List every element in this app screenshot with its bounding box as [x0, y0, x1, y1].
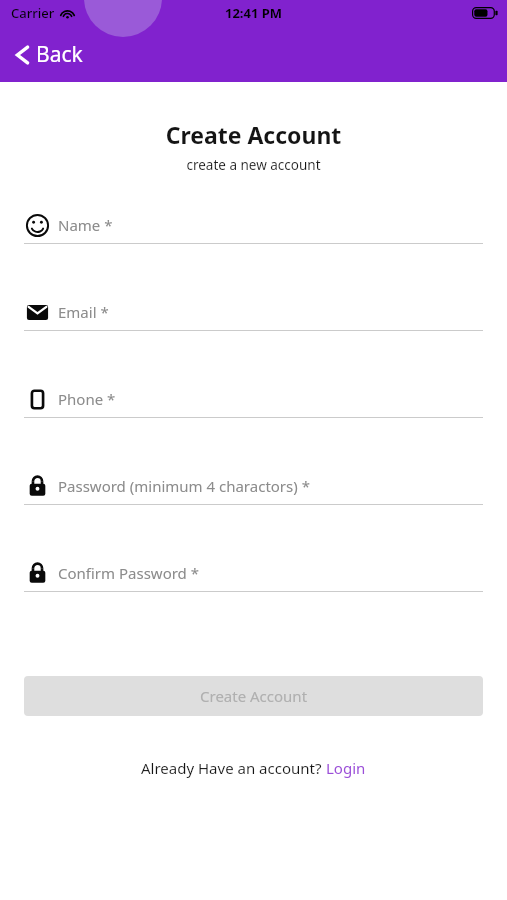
button[interactable]: Password [0, 473, 507, 560]
other: Phone [26, 388, 49, 411]
button[interactable]: Phone [0, 386, 507, 473]
staticText: Carrier [11, 4, 55, 22]
staticText: Back [36, 40, 83, 69]
staticText: Password (minimum 4 charactors) * [58, 476, 310, 496]
button[interactable]: Back [10, 38, 87, 71]
staticText: Confirm Password * [58, 563, 199, 583]
button[interactable]: Name [0, 212, 507, 299]
staticText: Create Account [0, 119, 507, 150]
staticText: Already Have an account? [141, 758, 326, 778]
staticText: Phone * [58, 389, 116, 409]
other: Name [26, 214, 49, 237]
staticText: Name * [58, 215, 113, 235]
other: Email [26, 301, 49, 324]
button[interactable]: Login [326, 758, 366, 778]
staticText: create a new account [0, 156, 507, 174]
staticText: Email * [58, 302, 109, 322]
button[interactable]: Email [0, 299, 507, 386]
button[interactable]: Password [0, 560, 507, 647]
staticText: Login [326, 758, 366, 778]
other: Password [26, 475, 49, 498]
staticText: 12:41 PM [225, 4, 283, 22]
staticText: Create Account [200, 686, 308, 706]
other: Password [26, 562, 49, 585]
button[interactable]: Create Account [24, 676, 483, 716]
